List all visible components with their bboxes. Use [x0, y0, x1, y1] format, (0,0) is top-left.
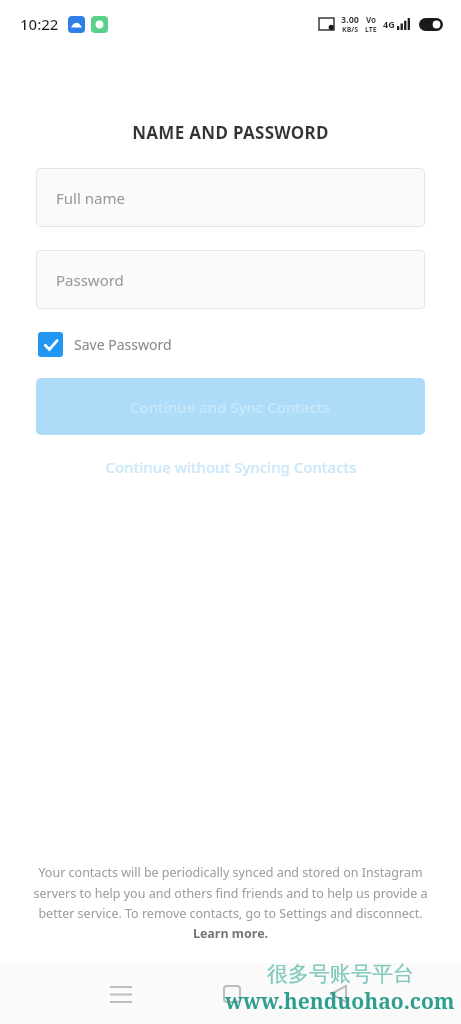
staticText: 很多号账号平台 [267, 961, 414, 987]
button[interactable]: Back [315, 971, 361, 1017]
staticText: Your contacts will be periodically synce… [28, 864, 433, 941]
staticText: 4G [383, 18, 395, 30]
button[interactable]: Continue without Syncing Contacts [0, 457, 461, 477]
staticText: KB/S [342, 25, 359, 35]
button[interactable]: Save Password [36, 330, 174, 359]
button[interactable]: Full name [36, 168, 425, 227]
staticText: Continue and Sync Contacts [130, 397, 331, 417]
staticText: Full name [56, 188, 125, 208]
staticText: Vo [366, 14, 377, 25]
button[interactable]: Continue and Sync Contacts [36, 378, 425, 435]
staticText: 3.00 [341, 13, 359, 25]
staticText: LTE [365, 25, 377, 35]
staticText: Continue without Syncing Contacts [105, 457, 357, 477]
staticText: 10:22 [20, 14, 59, 34]
staticText: www.henduohao.com [225, 987, 455, 1016]
button[interactable]: Recent apps [209, 971, 255, 1017]
staticText: Password [56, 270, 124, 290]
button[interactable]: Password [36, 250, 425, 309]
staticText: NAME AND PASSWORD [0, 121, 461, 144]
button[interactable]: Menu [98, 971, 144, 1017]
staticText: Save Password [74, 335, 172, 354]
